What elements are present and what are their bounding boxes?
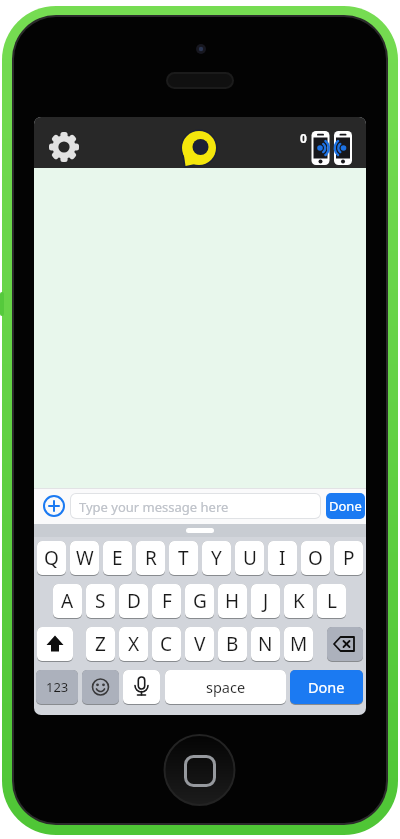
staticText: Z: [95, 631, 106, 657]
button[interactable]: T: [169, 541, 198, 575]
staticText: P: [343, 545, 355, 571]
staticText: H: [225, 588, 240, 614]
button[interactable]: F: [152, 584, 181, 618]
staticText: O: [308, 545, 323, 571]
button[interactable]: space: [165, 670, 286, 704]
button[interactable]: Done: [290, 670, 363, 704]
button[interactable]: P: [334, 541, 363, 575]
button[interactable]: [164, 735, 234, 805]
button[interactable]: H: [218, 584, 247, 618]
button[interactable]: G: [185, 584, 214, 618]
button[interactable]: Z: [86, 627, 115, 661]
button[interactable]: N: [251, 627, 280, 661]
button[interactable]: [34, 117, 366, 168]
staticText: V: [194, 631, 206, 657]
button[interactable]: R: [136, 541, 165, 575]
button[interactable]: Type your message here: [70, 493, 321, 519]
staticText: Y: [211, 545, 222, 571]
button[interactable]: I: [268, 541, 297, 575]
staticText: T: [178, 545, 189, 571]
staticText: Type your message here: [79, 498, 229, 516]
button[interactable]: V: [185, 627, 214, 661]
button[interactable]: D: [119, 584, 148, 618]
staticText: I: [279, 545, 286, 571]
button[interactable]: [123, 670, 160, 704]
staticText: M: [290, 631, 308, 657]
staticText: C: [160, 631, 173, 657]
button[interactable]: C: [152, 627, 181, 661]
staticText: G: [193, 588, 207, 614]
staticText: J: [263, 588, 269, 614]
button[interactable]: [42, 494, 66, 518]
staticText: Done: [308, 677, 345, 697]
button[interactable]: U: [235, 541, 264, 575]
button[interactable]: 123: [36, 670, 78, 704]
staticText: F: [162, 588, 172, 614]
button[interactable]: E: [103, 541, 132, 575]
button[interactable]: [82, 670, 119, 704]
button[interactable]: K: [284, 584, 313, 618]
button[interactable]: Y: [202, 541, 231, 575]
staticText: Q: [44, 545, 59, 571]
staticText: B: [226, 631, 239, 657]
button[interactable]: Q: [37, 541, 66, 575]
button[interactable]: [327, 627, 363, 661]
staticText: U: [243, 545, 257, 571]
staticText: W: [76, 545, 94, 571]
button[interactable]: L: [317, 584, 346, 618]
button[interactable]: A: [53, 584, 82, 618]
staticText: X: [128, 631, 140, 657]
button[interactable]: X: [119, 627, 148, 661]
button[interactable]: J: [251, 584, 280, 618]
button[interactable]: M: [284, 627, 313, 661]
staticText: 123: [46, 678, 69, 696]
staticText: R: [145, 545, 157, 571]
button[interactable]: W: [70, 541, 99, 575]
button[interactable]: B: [218, 627, 247, 661]
staticText: Done: [329, 497, 362, 515]
staticText: N: [258, 631, 273, 657]
staticText: L: [327, 588, 337, 614]
staticText: E: [112, 545, 123, 571]
staticText: D: [127, 588, 141, 614]
button[interactable]: [37, 627, 73, 661]
staticText: A: [61, 588, 74, 614]
staticText: K: [293, 588, 305, 614]
staticText: S: [95, 588, 106, 614]
button[interactable]: O: [301, 541, 330, 575]
button[interactable]: S: [86, 584, 115, 618]
button[interactable]: Done: [326, 493, 365, 519]
staticText: space: [206, 677, 246, 697]
staticText: 0: [300, 130, 307, 146]
